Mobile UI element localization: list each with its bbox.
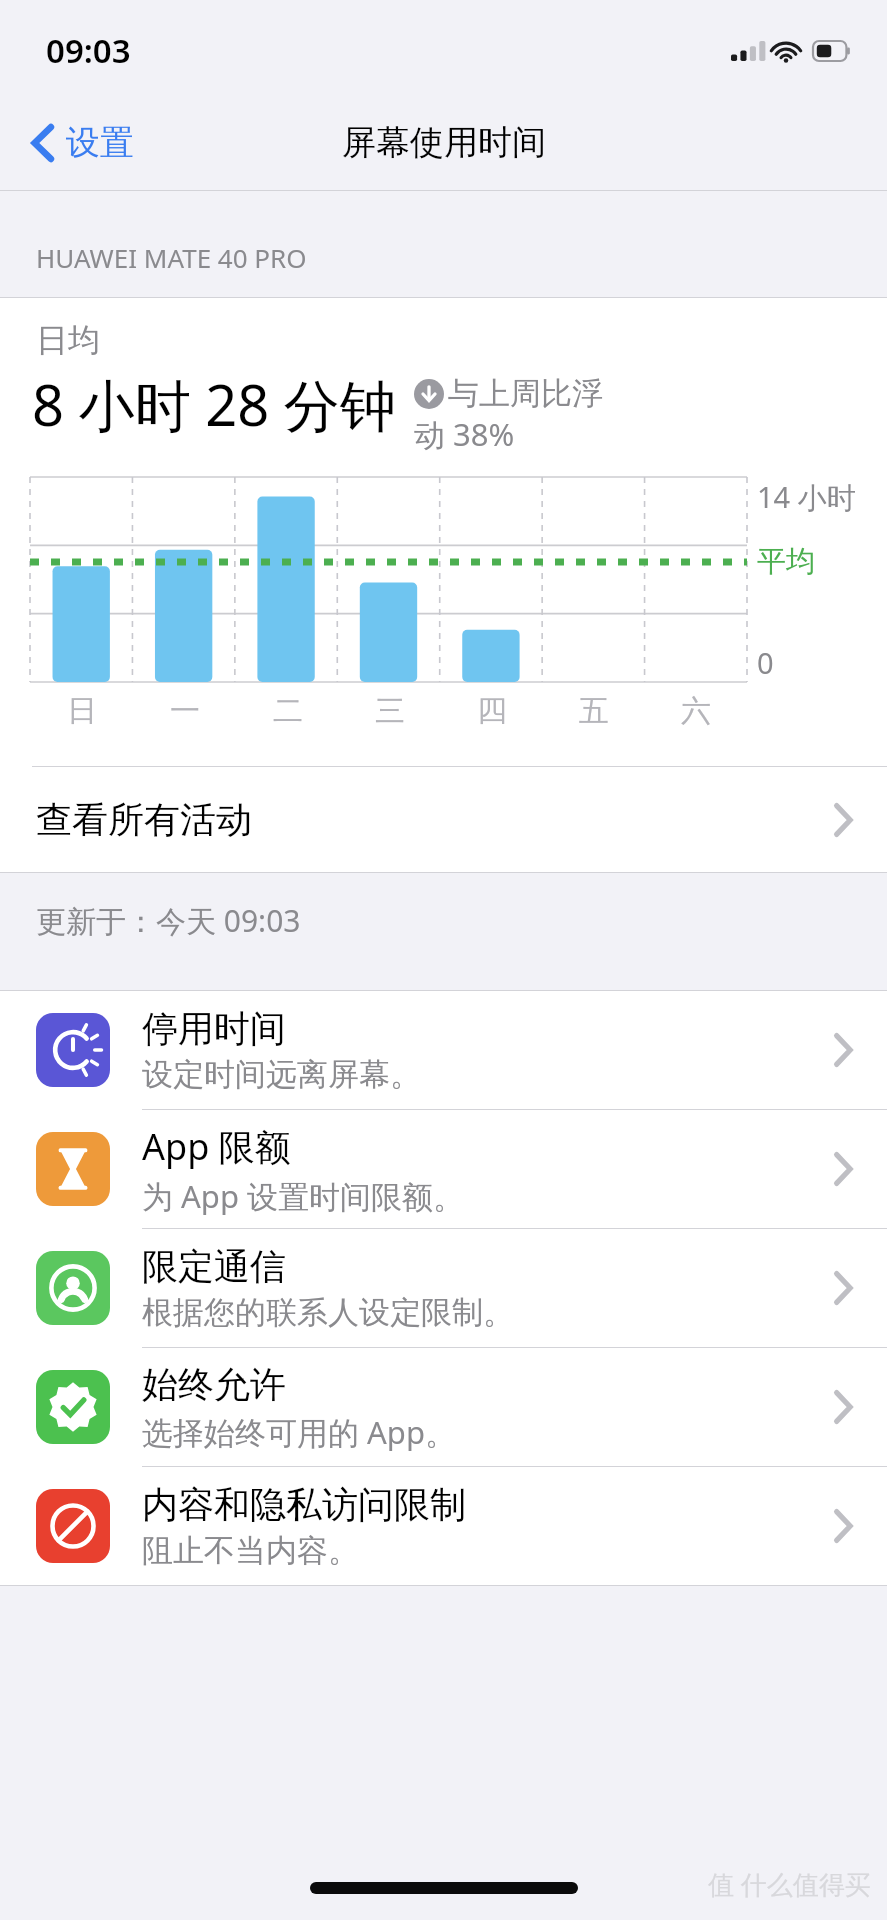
staticText: 09:03 <box>46 28 131 73</box>
staticText: 日 <box>67 692 97 730</box>
staticText: 0 <box>757 643 774 682</box>
staticText: 四 <box>477 692 507 730</box>
button[interactable]: 始终允许 <box>0 1348 887 1466</box>
staticText: 根据您的联系人设定限制。 <box>142 1293 514 1332</box>
staticText: App 限额 <box>142 1122 291 1171</box>
staticText: 动 38% <box>414 413 515 455</box>
staticText: 与上周比浮 <box>448 374 603 413</box>
staticText: 查看所有活动 <box>36 797 252 842</box>
button[interactable]: App 限额 <box>0 1110 887 1228</box>
staticText: 更新于：今天 09:03 <box>36 900 301 941</box>
staticText: 停用时间 <box>142 1006 286 1051</box>
staticText: 阻止不当内容。 <box>142 1531 359 1570</box>
staticText: 为 App 设置时间限额。 <box>142 1175 465 1217</box>
staticText: 平均 <box>757 543 815 580</box>
staticText: 五 <box>579 692 609 730</box>
staticText: 8 小时 28 分钟 <box>32 366 396 442</box>
staticText: 一 <box>170 692 200 730</box>
staticText: 三 <box>375 692 405 730</box>
button[interactable]: 停用时间 <box>0 991 887 1109</box>
staticText: 设置 <box>66 121 134 164</box>
button[interactable]: 内容和隐私访问限制 <box>0 1467 887 1585</box>
staticText: 内容和隐私访问限制 <box>142 1482 466 1527</box>
button[interactable]: 设置 <box>24 111 142 174</box>
staticText: 六 <box>681 692 711 730</box>
staticText: 屏幕使用时间 <box>342 121 546 164</box>
staticText: 日均 <box>36 320 100 360</box>
staticText: 选择始终可用的 App。 <box>142 1411 456 1453</box>
staticText: 限定通信 <box>142 1244 286 1289</box>
button[interactable]: 查看所有活动 <box>0 767 887 872</box>
staticText: 始终允许 <box>142 1362 286 1407</box>
staticText: HUAWEI MATE 40 PRO <box>36 240 307 275</box>
staticText: 二 <box>273 692 303 730</box>
staticText: 14 小时 <box>757 477 856 517</box>
button[interactable]: 限定通信 <box>0 1229 887 1347</box>
staticText: 值 什么值得买 <box>708 1866 871 1902</box>
staticText: 设定时间远离屏幕。 <box>142 1055 421 1094</box>
